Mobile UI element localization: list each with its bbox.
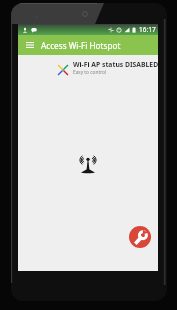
staticText: Easy to control (73, 69, 107, 76)
button[interactable]: Configure hotspot (129, 226, 151, 248)
staticText: Access Wi-Fi Hotspot (41, 40, 121, 51)
staticText: 16:17 (139, 25, 156, 34)
button[interactable]: Wi-Fi AP status DISABLED (18, 55, 158, 80)
button[interactable]: Open navigation drawer (22, 37, 38, 53)
staticText: Wi-Fi AP status DISABLED (73, 60, 158, 69)
